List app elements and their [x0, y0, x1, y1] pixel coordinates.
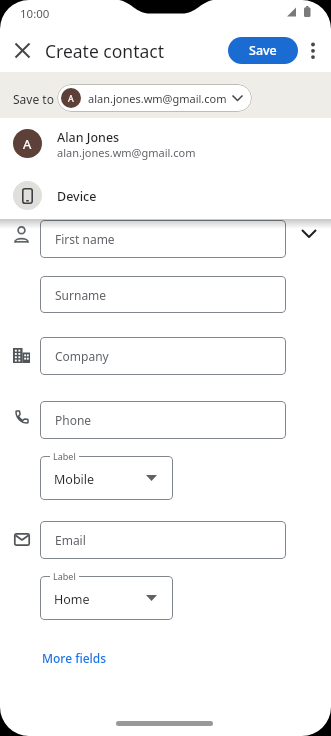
button[interactable]: Email [40, 521, 286, 559]
button[interactable]: Company [40, 337, 286, 375]
staticText: Save to [13, 91, 54, 107]
button[interactable]: A [57, 84, 252, 112]
button[interactable]: Device [0, 171, 331, 219]
staticText: Email [55, 532, 86, 548]
staticText: 10:00 [20, 6, 50, 22]
staticText: A [23, 135, 32, 153]
staticText: Phone [55, 412, 92, 428]
staticText: Alan Jones [57, 129, 120, 146]
staticText: Company [55, 348, 109, 364]
staticText: First name [55, 231, 115, 247]
staticText: A [68, 92, 74, 104]
button[interactable]: More fields [42, 650, 107, 666]
button[interactable]: A [0, 118, 331, 171]
button[interactable]: First name [40, 220, 286, 258]
button[interactable] [14, 42, 31, 59]
button[interactable]: Surname [40, 276, 286, 313]
button[interactable] [296, 222, 322, 246]
button[interactable]: Home [40, 576, 173, 620]
button[interactable] [306, 42, 320, 60]
staticText: Save [249, 42, 277, 59]
button[interactable]: Save [228, 37, 298, 64]
staticText: Home [54, 591, 90, 608]
staticText: Label [53, 570, 76, 582]
staticText: Label [53, 450, 76, 462]
staticText: Device [57, 188, 97, 205]
staticText: Surname [55, 287, 107, 303]
button[interactable]: Phone [40, 401, 286, 439]
staticText: More fields [42, 650, 107, 666]
button[interactable]: Mobile [40, 456, 173, 500]
staticText: Create contact [45, 39, 165, 63]
staticText: alan.jones.wm@gmail.com [88, 91, 227, 106]
staticText: Mobile [54, 471, 95, 488]
staticText: alan.jones.wm@gmail.com [57, 145, 196, 160]
